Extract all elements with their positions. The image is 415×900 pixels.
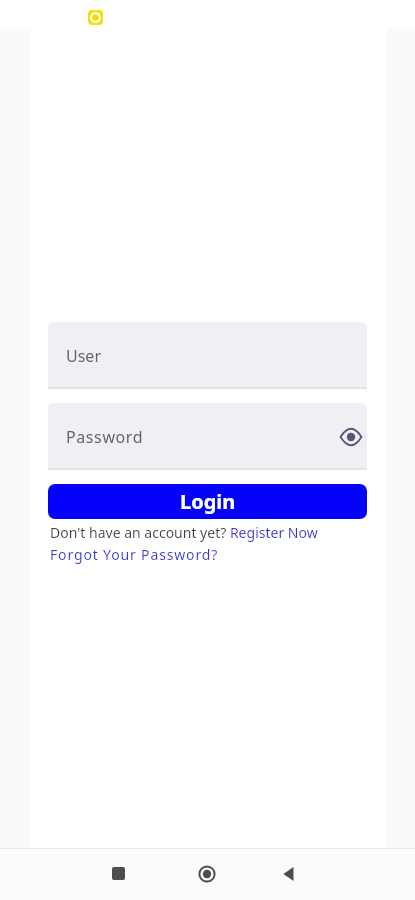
button[interactable]: Password <box>48 403 367 470</box>
button[interactable] <box>282 867 296 881</box>
button[interactable]: Forgot Your Password? <box>50 545 219 564</box>
staticText: Password <box>66 426 144 448</box>
button[interactable] <box>340 426 362 448</box>
staticText: Login <box>180 488 236 515</box>
button[interactable]: User <box>48 322 367 389</box>
button[interactable]: Login <box>48 484 367 519</box>
staticText: User <box>66 345 101 367</box>
button[interactable]: Don't have an account yet? Register Now <box>50 523 318 542</box>
button[interactable] <box>197 864 217 884</box>
button[interactable] <box>112 867 125 880</box>
